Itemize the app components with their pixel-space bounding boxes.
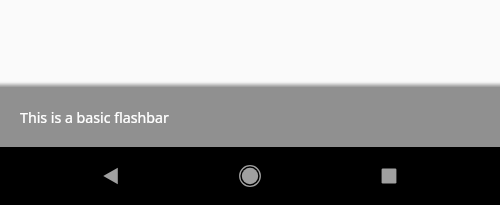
button[interactable]: This is a basic flashbar	[0, 87, 500, 147]
button[interactable]: Home	[222, 147, 278, 205]
button[interactable]: Back	[83, 147, 139, 205]
staticText: This is a basic flashbar	[20, 108, 169, 127]
button[interactable]: Recent apps	[361, 147, 417, 205]
